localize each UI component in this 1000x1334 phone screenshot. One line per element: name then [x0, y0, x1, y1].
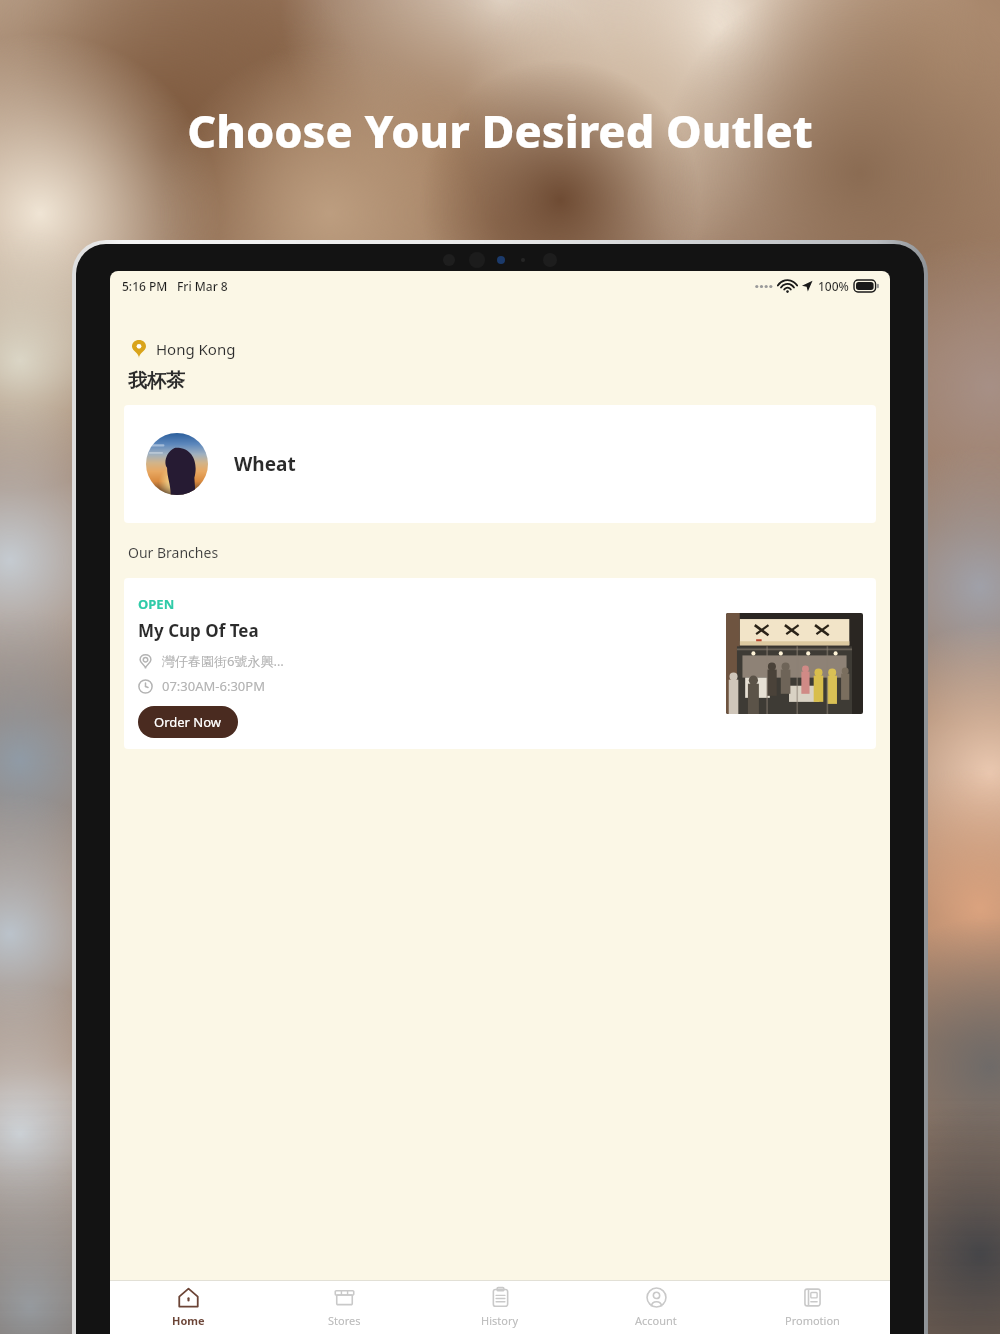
button[interactable]: Order Now	[138, 706, 238, 738]
button[interactable]: History	[422, 1281, 578, 1334]
button[interactable]: Promotion	[734, 1281, 890, 1334]
staticText: Stores	[328, 1313, 361, 1328]
staticText: Hong Kong	[156, 339, 236, 359]
staticText: My Cup Of Tea	[138, 619, 259, 642]
staticText: Fri Mar 8	[177, 278, 228, 294]
button[interactable]: Hong Kong	[132, 339, 236, 359]
button[interactable]: Stores	[266, 1281, 422, 1334]
staticText: 5:16 PM	[122, 278, 168, 294]
staticText: 07:30AM-6:30PM	[162, 677, 265, 695]
button[interactable]: Account	[578, 1281, 734, 1334]
staticText: Order Now	[154, 713, 222, 731]
staticText: 灣仔春園街6號永興…	[162, 652, 284, 670]
staticText: Choose Your Desired Outlet	[187, 100, 813, 161]
staticText: Home	[172, 1313, 205, 1328]
button[interactable]: Home	[110, 1281, 266, 1334]
button[interactable]: OPEN	[124, 578, 876, 749]
staticText: Wheat	[234, 451, 296, 477]
staticText: Our Branches	[128, 543, 219, 562]
staticText: Account	[635, 1313, 677, 1328]
button[interactable]: Wheat	[124, 405, 876, 523]
staticText: Promotion	[785, 1313, 840, 1328]
staticText: History	[481, 1313, 519, 1328]
staticText: 我杯茶	[128, 369, 185, 393]
staticText: 100%	[818, 278, 849, 294]
staticText: OPEN	[138, 595, 175, 613]
